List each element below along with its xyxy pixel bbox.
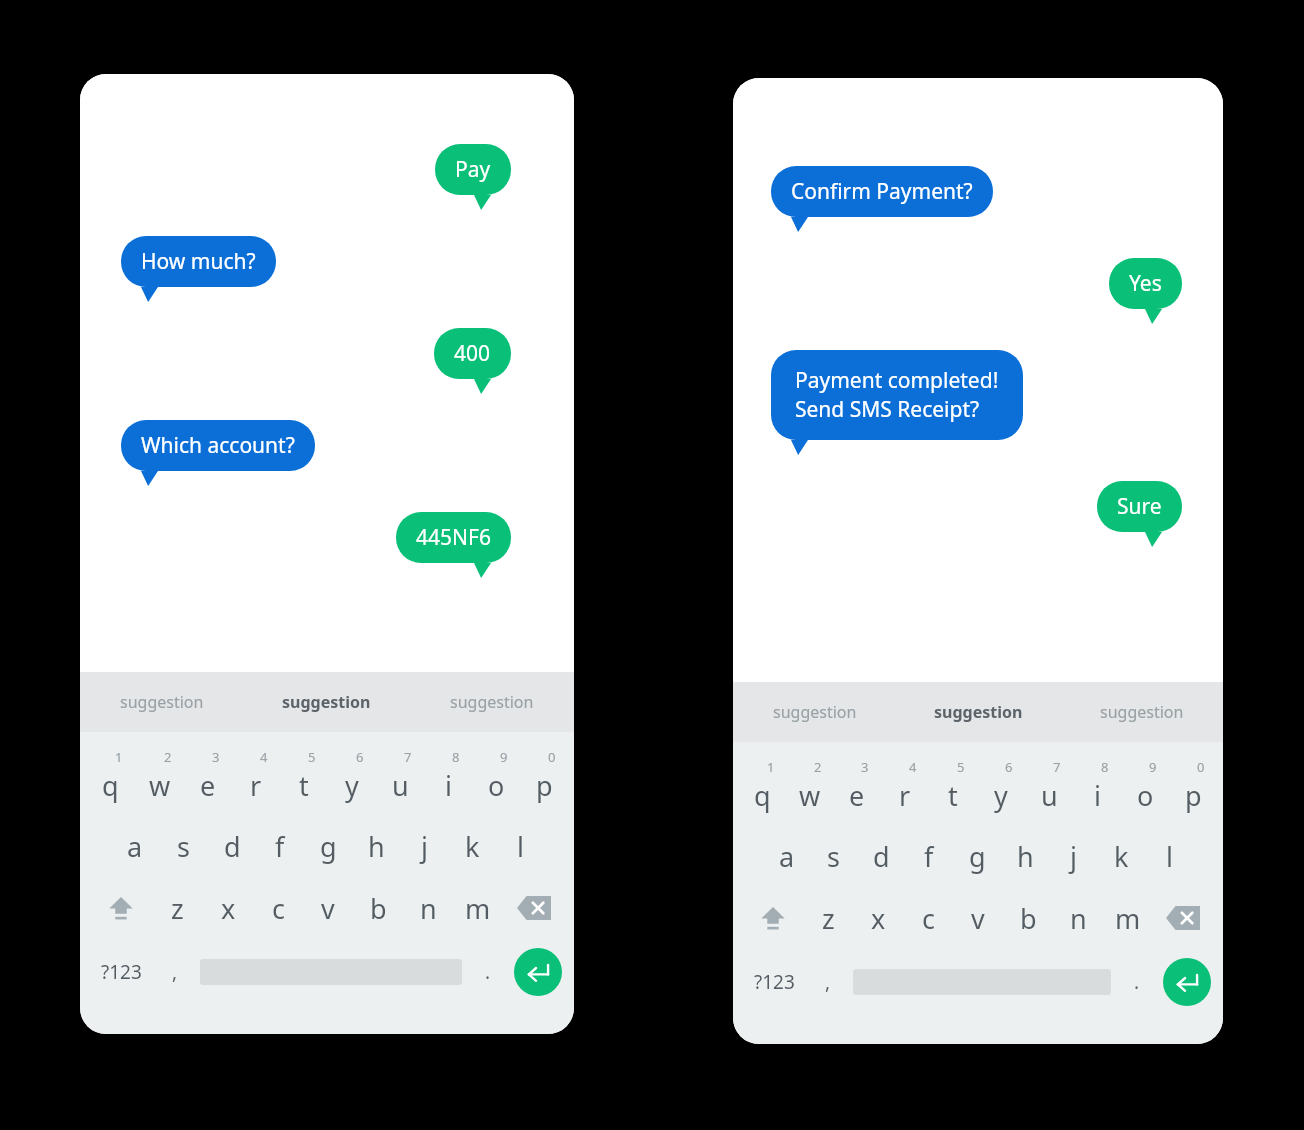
button[interactable]: ?123 xyxy=(92,946,150,998)
button[interactable]: Send xyxy=(1163,958,1211,1006)
button[interactable]: g xyxy=(304,820,352,872)
button[interactable]: b xyxy=(353,882,403,934)
button[interactable]: Backspace xyxy=(503,882,564,934)
button[interactable]: Which account? xyxy=(121,420,315,471)
button[interactable]: suggestion xyxy=(1060,682,1223,742)
button[interactable]: f xyxy=(256,820,304,872)
button[interactable]: v xyxy=(953,892,1003,944)
staticText: suggestion xyxy=(282,691,371,713)
button[interactable]: a xyxy=(110,820,159,872)
button[interactable]: z xyxy=(803,892,853,944)
button[interactable]: l xyxy=(1145,830,1193,882)
button[interactable]: l xyxy=(496,820,544,872)
button[interactable]: Send xyxy=(514,948,562,996)
button[interactable]: 8 xyxy=(424,748,472,810)
button[interactable]: 445NF6 xyxy=(396,512,511,563)
button[interactable]: , xyxy=(150,946,200,998)
button[interactable]: 1 xyxy=(739,758,786,820)
staticText: ?123 xyxy=(754,969,795,995)
button[interactable]: 9 xyxy=(472,748,520,810)
staticText: 8 xyxy=(1101,758,1109,776)
button[interactable]: j xyxy=(1049,830,1097,882)
button[interactable]: Payment completed! xyxy=(771,350,1023,440)
button[interactable]: m xyxy=(453,882,503,934)
button[interactable]: n xyxy=(1053,892,1103,944)
button[interactable]: 2 xyxy=(135,748,184,810)
staticText: t xyxy=(948,777,958,814)
button[interactable]: 6 xyxy=(328,748,376,810)
staticText: 0 xyxy=(548,748,556,766)
button[interactable]: s xyxy=(159,820,208,872)
button[interactable]: 7 xyxy=(376,748,424,810)
staticText: . xyxy=(1134,969,1140,995)
button[interactable]: Pay xyxy=(435,144,511,195)
button[interactable]: . xyxy=(462,946,514,998)
button[interactable]: j xyxy=(400,820,448,872)
staticText: 5 xyxy=(957,758,965,776)
button[interactable]: Yes xyxy=(1109,258,1182,309)
button[interactable]: ?123 xyxy=(745,956,803,1008)
staticText: suggestion xyxy=(934,701,1023,723)
button[interactable]: . xyxy=(1111,956,1163,1008)
staticText: suggestion xyxy=(773,701,857,723)
button[interactable]: a xyxy=(763,830,810,882)
button[interactable]: Shift xyxy=(743,892,803,944)
button[interactable]: suggestion xyxy=(244,672,409,732)
staticText: c xyxy=(272,890,285,927)
button[interactable]: s xyxy=(810,830,857,882)
button[interactable]: 9 xyxy=(1121,758,1169,820)
button[interactable]: k xyxy=(448,820,496,872)
button[interactable]: 6 xyxy=(977,758,1025,820)
button[interactable]: x xyxy=(853,892,903,944)
button[interactable]: 4 xyxy=(881,758,929,820)
staticText: k xyxy=(1114,838,1129,875)
staticText: s xyxy=(827,838,840,875)
button[interactable]: Sure xyxy=(1097,481,1182,532)
button[interactable]: 0 xyxy=(1169,758,1217,820)
staticText: i xyxy=(445,767,452,804)
staticText: . xyxy=(485,959,491,985)
button[interactable]: 5 xyxy=(929,758,977,820)
button[interactable]: m xyxy=(1103,892,1153,944)
button[interactable]: 4 xyxy=(232,748,280,810)
button[interactable]: 8 xyxy=(1073,758,1121,820)
button[interactable]: d xyxy=(857,830,905,882)
staticText: w xyxy=(149,767,171,804)
staticText: i xyxy=(1094,777,1101,814)
button[interactable]: Backspace xyxy=(1153,892,1213,944)
button[interactable]: h xyxy=(352,820,400,872)
button[interactable]: Confirm Payment? xyxy=(771,166,993,217)
button[interactable]: f xyxy=(905,830,953,882)
button[interactable]: 5 xyxy=(280,748,328,810)
button[interactable]: v xyxy=(303,882,353,934)
button[interactable]: d xyxy=(208,820,256,872)
button[interactable]: suggestion xyxy=(733,682,897,742)
button[interactable]: 2 xyxy=(786,758,833,820)
button[interactable]: 3 xyxy=(184,748,232,810)
button[interactable]: How much? xyxy=(121,236,276,287)
button[interactable]: , xyxy=(803,956,853,1008)
button[interactable]: c xyxy=(253,882,303,934)
staticText: p xyxy=(536,767,553,804)
button[interactable]: 0 xyxy=(520,748,568,810)
button[interactable]: suggestion xyxy=(80,672,244,732)
button[interactable]: suggestion xyxy=(897,682,1060,742)
button[interactable]: c xyxy=(903,892,953,944)
button[interactable]: 400 xyxy=(434,328,511,379)
button[interactable]: g xyxy=(953,830,1001,882)
staticText: g xyxy=(969,838,986,875)
button[interactable]: x xyxy=(203,882,253,934)
button[interactable]: n xyxy=(403,882,453,934)
button[interactable]: Shift xyxy=(90,882,152,934)
button[interactable]: suggestion xyxy=(409,672,574,732)
button[interactable]: b xyxy=(1003,892,1053,944)
staticText: Yes xyxy=(1129,269,1162,298)
button[interactable]: z xyxy=(152,882,203,934)
button[interactable]: 1 xyxy=(86,748,135,810)
button[interactable]: k xyxy=(1097,830,1145,882)
button[interactable]: h xyxy=(1001,830,1049,882)
button[interactable]: 7 xyxy=(1025,758,1073,820)
button[interactable]: 3 xyxy=(833,758,881,820)
